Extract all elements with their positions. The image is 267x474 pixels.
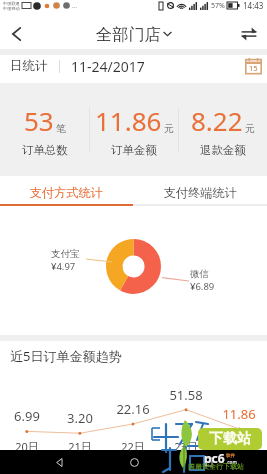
- button[interactable]: Switch account: [234, 19, 264, 49]
- staticText: .com: [226, 459, 237, 465]
- staticText: 23日: [174, 439, 198, 454]
- staticText: 51.58: [169, 386, 203, 404]
- staticText: 20日: [15, 439, 39, 454]
- staticText: 元: [164, 122, 174, 135]
- staticText: ¥4.97: [51, 260, 76, 273]
- staticText: 支付宝: [51, 248, 80, 260]
- staticText: ¥6.89: [190, 280, 215, 293]
- button[interactable]: 全部门店: [96, 24, 172, 44]
- staticText: ...: [72, 2, 77, 10]
- staticText: 日统计: [10, 58, 48, 74]
- staticText: 订单总数: [22, 143, 68, 157]
- staticText: 53: [24, 103, 54, 138]
- button[interactable]: 支付终端统计: [133, 176, 267, 204]
- button[interactable]: 支付方式统计: [0, 176, 133, 204]
- staticText: 21日: [68, 439, 92, 454]
- staticText: 订单金额: [111, 143, 157, 157]
- staticText: 11-24/2017: [71, 57, 145, 76]
- staticText: 6.99: [14, 407, 40, 425]
- button[interactable]: 8.22: [179, 83, 267, 176]
- staticText: 8.22: [191, 103, 243, 138]
- button[interactable]: 11.86: [90, 83, 178, 176]
- staticText: 14:43: [243, 0, 264, 11]
- staticText: 15: [249, 63, 258, 73]
- staticText: 22.16: [116, 400, 150, 418]
- button[interactable]: 53: [0, 83, 89, 176]
- staticText: 微信: [190, 268, 209, 280]
- button[interactable]: Back: [44, 450, 74, 474]
- button[interactable]: Recents: [193, 450, 223, 474]
- staticText: 11.86: [222, 405, 256, 423]
- staticText: 11.86: [95, 103, 162, 138]
- staticText: 57%: [211, 1, 225, 11]
- staticText: 全部门店: [96, 24, 161, 44]
- button[interactable]: Back: [1, 19, 31, 49]
- staticText: 元: [245, 122, 255, 135]
- staticText: 中国联通: [3, 1, 20, 6]
- button[interactable]: Home: [119, 450, 149, 474]
- staticText: 支付终端统计: [164, 185, 237, 200]
- staticText: 近5日订单金额趋势: [10, 347, 122, 365]
- staticText: 笔: [56, 122, 66, 135]
- staticText: 24日: [227, 439, 251, 454]
- staticText: 退款金额: [200, 143, 246, 157]
- staticText: 下载站: [209, 430, 251, 448]
- staticText: 3.20: [67, 409, 93, 427]
- staticText: 支付方式统计: [30, 185, 103, 200]
- staticText: 22日: [121, 439, 145, 454]
- staticText: pc6: [204, 450, 225, 466]
- staticText: 中国移动: [3, 6, 20, 11]
- staticText: 软件: [226, 453, 235, 459]
- staticText: 国最安全行下载站: [188, 462, 244, 471]
- button[interactable]: Pick date: [242, 55, 264, 77]
